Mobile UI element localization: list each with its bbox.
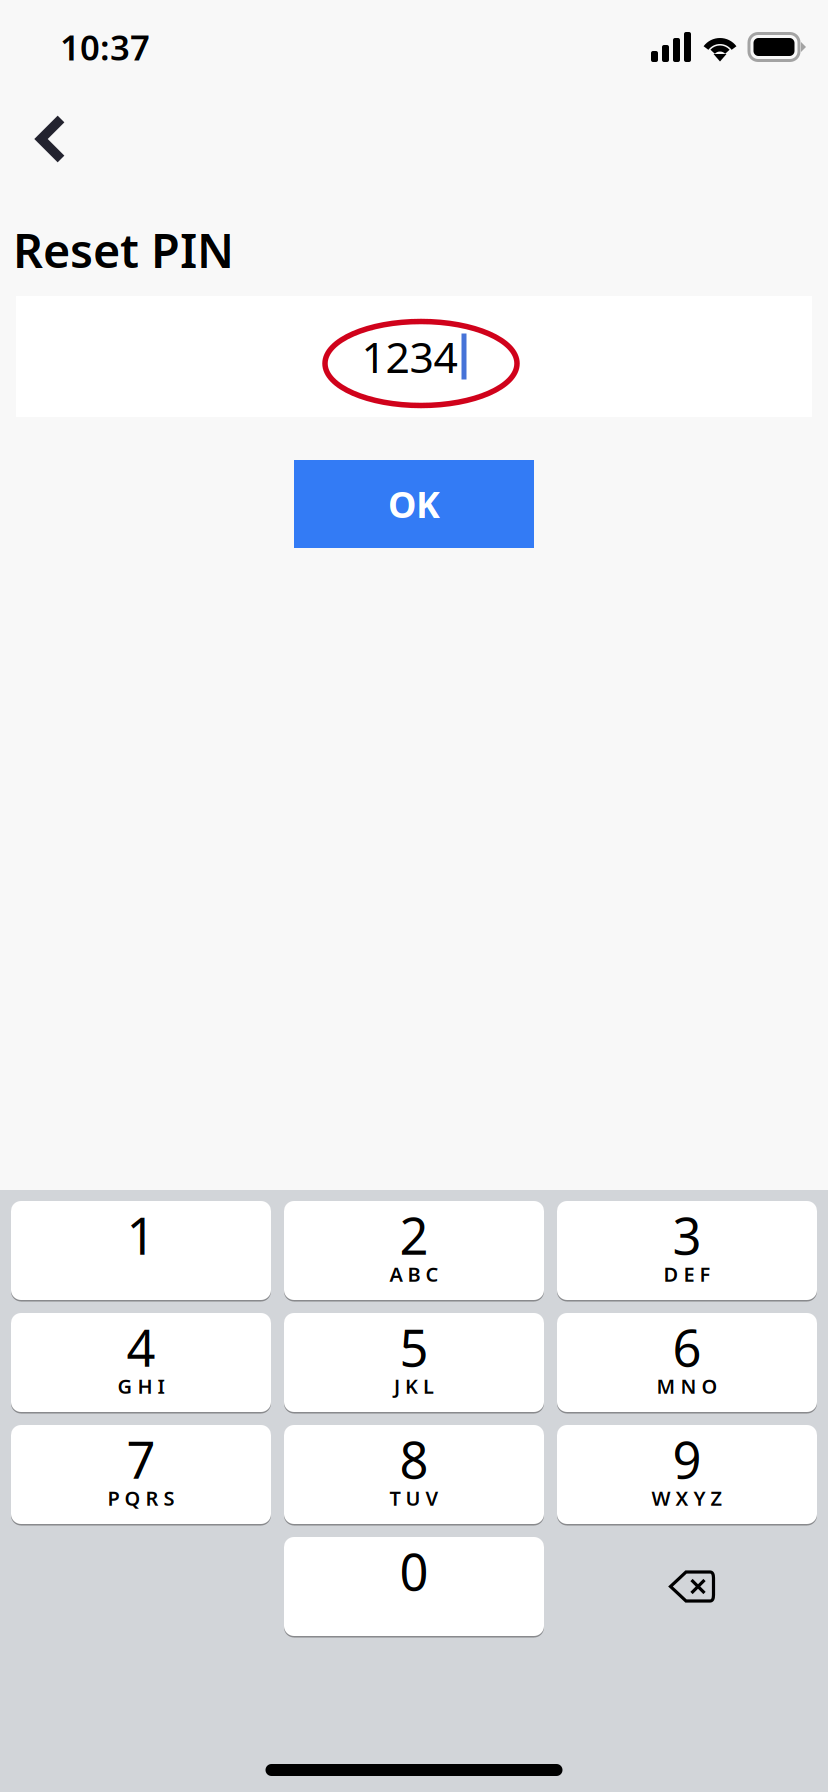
staticText: OK — [388, 480, 440, 528]
staticText: 4 — [126, 1313, 155, 1381]
button[interactable]: 4 — [11, 1313, 271, 1412]
staticText: P Q R S — [107, 1485, 174, 1511]
button[interactable]: 1 — [11, 1201, 271, 1300]
staticText: 1234 — [361, 328, 457, 385]
staticText: 5 — [399, 1313, 428, 1381]
button[interactable]: PIN entry field — [16, 296, 812, 417]
button[interactable]: OK — [294, 460, 534, 548]
staticText: 1 — [126, 1201, 155, 1269]
button[interactable]: 2 — [284, 1201, 544, 1300]
button[interactable]: 7 — [11, 1425, 271, 1524]
staticText: 10:37 — [60, 24, 150, 70]
staticText: W X Y Z — [651, 1485, 722, 1511]
staticText: 7 — [126, 1425, 155, 1493]
button[interactable]: 0 — [284, 1537, 544, 1636]
staticText: 3 — [672, 1201, 701, 1269]
button[interactable]: 5 — [284, 1313, 544, 1412]
button[interactable]: Back — [0, 90, 102, 184]
button[interactable]: 3 — [557, 1201, 817, 1300]
button[interactable]: 9 — [557, 1425, 817, 1524]
staticText: M N O — [656, 1373, 717, 1399]
staticText: 0 — [399, 1537, 428, 1605]
staticText: T U V — [389, 1485, 438, 1511]
button[interactable]: 6 — [557, 1313, 817, 1412]
staticText: D E F — [663, 1261, 710, 1287]
button[interactable]: Delete — [557, 1537, 817, 1636]
staticText: J K L — [394, 1373, 434, 1399]
button[interactable]: 8 — [284, 1425, 544, 1524]
staticText: Reset PIN — [13, 219, 234, 281]
staticText: 6 — [672, 1313, 701, 1381]
staticText: 2 — [399, 1201, 428, 1269]
staticText: A B C — [389, 1261, 438, 1287]
staticText: 9 — [672, 1425, 701, 1493]
staticText: G H I — [117, 1373, 164, 1399]
staticText: 8 — [399, 1425, 428, 1493]
